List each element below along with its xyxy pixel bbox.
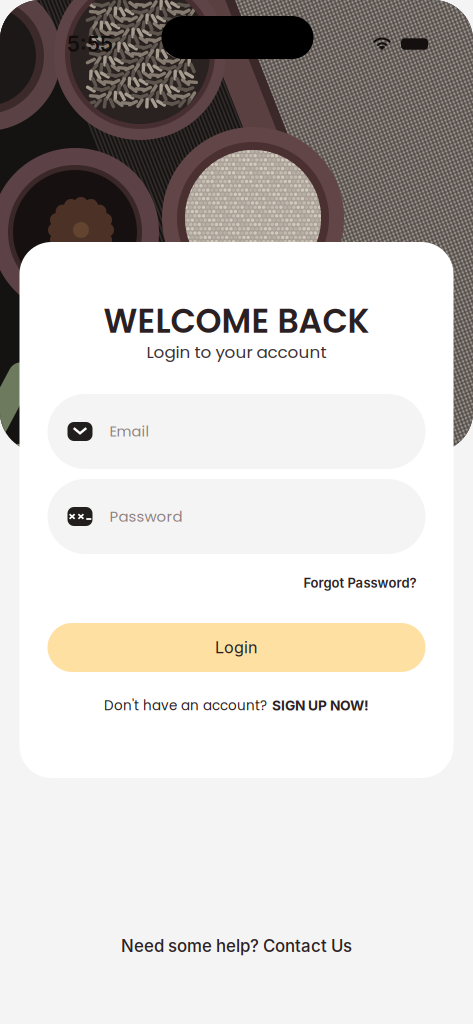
staticText: Email (109, 421, 149, 442)
button[interactable]: Need some help? Contact Us (86, 931, 386, 961)
button[interactable]: Login (47, 623, 425, 672)
button[interactable]: Forgot Password? (303, 571, 416, 595)
staticText: SIGN UP NOW! (272, 697, 369, 714)
staticText: Login (215, 638, 258, 657)
button[interactable]: SIGN UP NOW! (272, 697, 369, 714)
staticText: Forgot Password? (303, 575, 416, 591)
staticText: WELCOME BACK (103, 298, 369, 344)
staticText: 5:55 (67, 31, 113, 57)
staticText: Login to your account (146, 340, 326, 364)
button[interactable]: Email (47, 394, 425, 469)
staticText: Password (109, 506, 182, 527)
button[interactable]: Password (47, 479, 425, 554)
staticText: Don't have an account? (104, 696, 267, 715)
staticText: Need some help? Contact Us (121, 936, 352, 956)
